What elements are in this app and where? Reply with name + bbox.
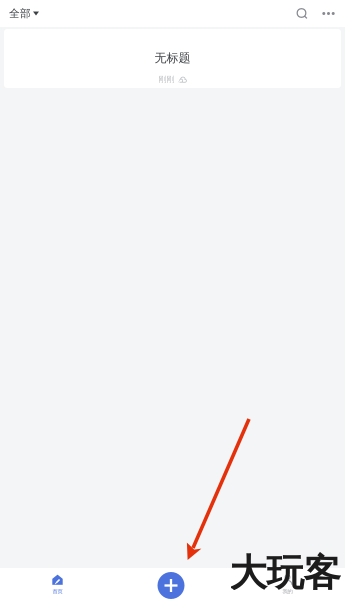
button[interactable]: 全部 xyxy=(0,0,47,27)
staticText: 无标题 xyxy=(154,51,190,65)
button[interactable]: New note xyxy=(115,568,230,600)
button[interactable]: 我的 xyxy=(230,568,345,600)
staticText: 大玩客 xyxy=(229,550,340,596)
button[interactable]: More xyxy=(312,0,345,27)
button[interactable]: 无标题 xyxy=(4,29,341,88)
staticText: 我的 xyxy=(282,588,292,595)
button[interactable]: 首页 xyxy=(0,568,115,600)
staticText: 首页 xyxy=(52,588,62,595)
staticText: 全部 xyxy=(9,7,31,20)
staticText: 刚刚 xyxy=(158,74,174,84)
button[interactable]: Search xyxy=(282,0,312,27)
